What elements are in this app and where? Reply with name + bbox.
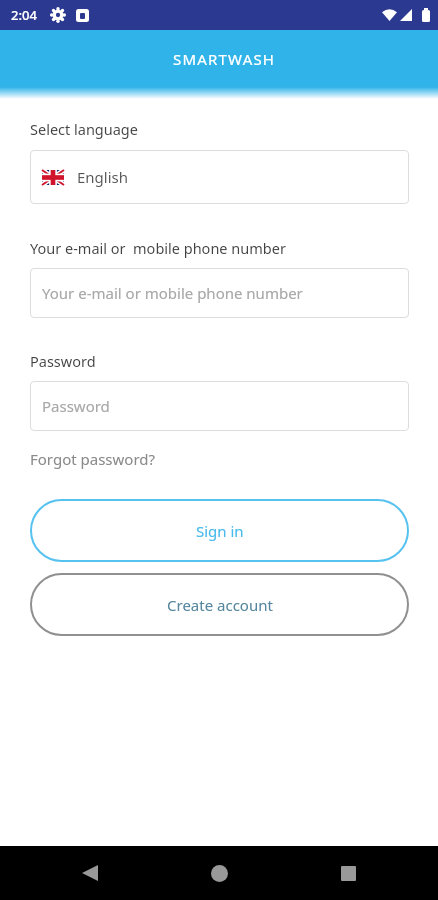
- button[interactable]: Your e-mail or mobile phone number: [30, 268, 409, 318]
- staticText: SMARTWASH: [173, 49, 276, 69]
- button[interactable]: Forgot password?: [30, 449, 156, 469]
- staticText: Password: [42, 396, 110, 416]
- staticText: Select language: [30, 119, 138, 139]
- button[interactable]: [321, 846, 375, 900]
- button[interactable]: [63, 846, 117, 900]
- staticText: 2:04: [11, 6, 37, 24]
- button[interactable]: Sign in: [30, 499, 409, 562]
- staticText: Password: [30, 351, 96, 371]
- button[interactable]: [192, 846, 246, 900]
- staticText: Sign in: [196, 521, 244, 541]
- staticText: Your e-mail or mobile phone number: [42, 283, 303, 303]
- staticText: Create account: [167, 595, 273, 615]
- staticText: Your e-mail or mobile phone number: [30, 238, 286, 258]
- button[interactable]: Password: [30, 381, 409, 431]
- button[interactable]: English: [30, 150, 409, 204]
- button[interactable]: Create account: [30, 573, 409, 636]
- staticText: English: [77, 167, 129, 187]
